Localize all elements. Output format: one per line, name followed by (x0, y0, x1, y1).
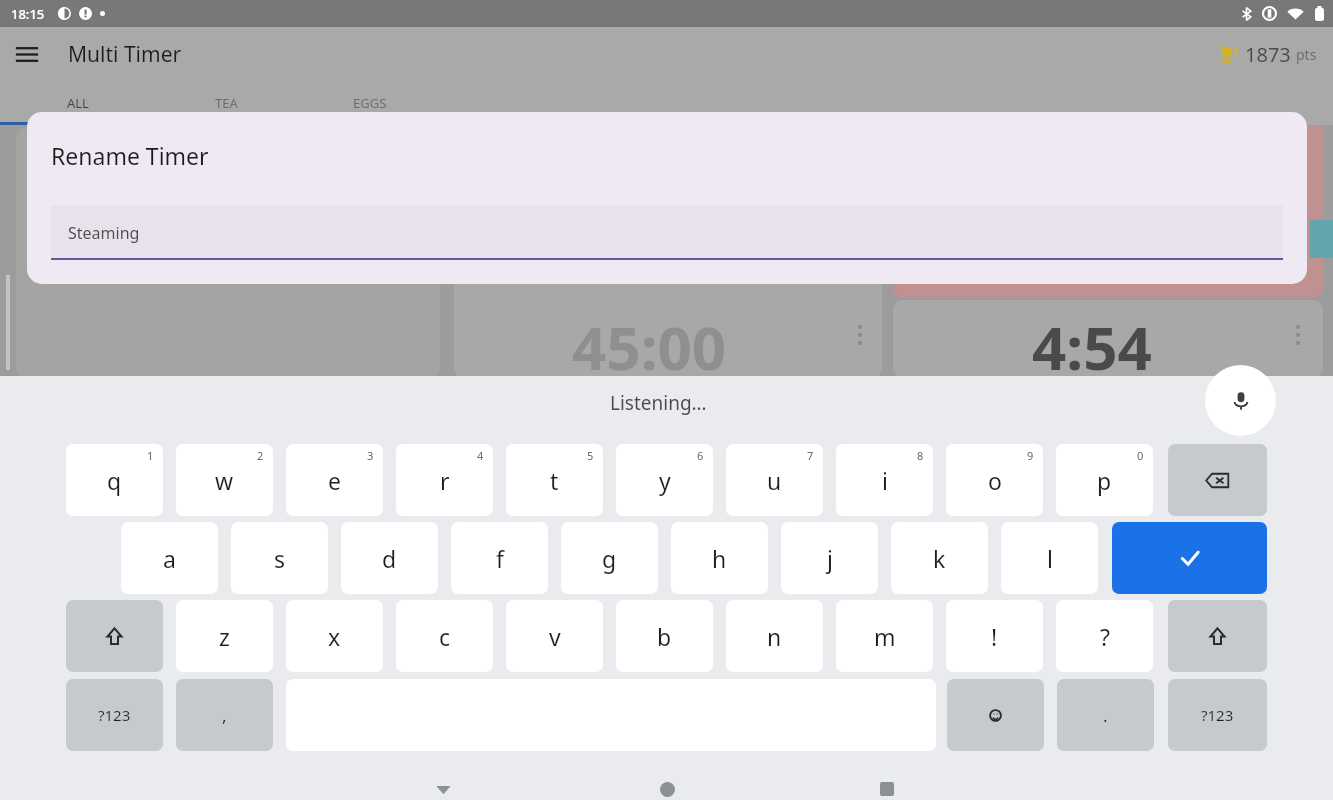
staticText: q (107, 465, 122, 496)
staticText: 18:15 (11, 5, 45, 23)
button[interactable]: x (286, 600, 383, 672)
button[interactable]: r (396, 444, 493, 516)
staticText: r (440, 465, 450, 496)
button[interactable]: Shift (1168, 600, 1267, 672)
button[interactable]: t (506, 444, 603, 516)
staticText: y (659, 465, 671, 496)
button[interactable]: g (561, 522, 658, 594)
button[interactable]: Backspace (1168, 444, 1267, 516)
button[interactable] (16, 128, 440, 378)
button[interactable]: Open navigation menu (8, 35, 46, 73)
staticText: 2 (257, 448, 264, 463)
staticText: w (215, 465, 234, 496)
button[interactable]: k (891, 522, 988, 594)
staticText: x (328, 621, 341, 652)
button[interactable]: 5:00 (16, 128, 122, 278)
button[interactable]: , (176, 679, 273, 751)
staticText: 1873 (1245, 41, 1291, 68)
staticText: 3 (367, 448, 374, 463)
button[interactable]: a (121, 522, 218, 594)
button[interactable]: i (836, 444, 933, 516)
staticText: 1 (147, 448, 154, 463)
button[interactable]: l (1001, 522, 1098, 594)
button[interactable]: . (1057, 679, 1154, 751)
button[interactable]: ? (1056, 600, 1153, 672)
button[interactable]: ! (946, 600, 1043, 672)
button[interactable]: TEA (176, 81, 276, 125)
staticText: pts (1296, 45, 1317, 64)
button[interactable]: Enter (1112, 522, 1267, 594)
staticText: v (549, 621, 561, 652)
button[interactable]: n (726, 600, 823, 672)
staticText: 5 (587, 448, 594, 463)
staticText: Listening… (610, 390, 707, 416)
button[interactable]: 1873 (1217, 41, 1317, 68)
button[interactable]: Emoji (947, 679, 1044, 751)
button[interactable] (893, 86, 1323, 298)
button[interactable]: y (616, 444, 713, 516)
button[interactable]: m (836, 600, 933, 672)
staticText: ALL (67, 94, 89, 112)
button[interactable]: o (946, 444, 1043, 516)
button[interactable]: More options (1291, 325, 1305, 347)
staticText: g (602, 543, 617, 574)
button[interactable]: More options (1291, 100, 1305, 122)
staticText: 7 (807, 448, 814, 463)
staticText: 0 (1137, 448, 1144, 463)
staticText: u (767, 465, 782, 496)
button[interactable]: z (176, 600, 273, 672)
button[interactable]: Home (636, 758, 698, 800)
button[interactable]: 6:00 (122, 128, 228, 278)
staticText: Multi Timer (68, 40, 182, 69)
staticText: n (767, 621, 782, 652)
staticText: i (882, 465, 888, 496)
button[interactable]: v (506, 600, 603, 672)
staticText: ?123 (98, 705, 131, 725)
button[interactable]: b (616, 600, 713, 672)
button[interactable]: ?123 (1168, 679, 1267, 751)
staticText: 6 (697, 448, 704, 463)
staticText: . (1103, 704, 1108, 727)
staticText: ! (991, 621, 998, 652)
staticText: Steaming (68, 222, 140, 244)
button[interactable]: d (341, 522, 438, 594)
button[interactable]: 7:00 (228, 128, 334, 278)
staticText: 8 (917, 448, 924, 463)
button[interactable]: 8:00 (334, 128, 440, 278)
staticText: j (827, 543, 833, 574)
button[interactable]: q (66, 444, 163, 516)
button[interactable]: h (671, 522, 768, 594)
button[interactable]: u (726, 444, 823, 516)
staticText: 4 (477, 448, 484, 463)
staticText: 45:00 (572, 306, 727, 388)
staticText: o (988, 465, 1002, 496)
button[interactable]: Back (412, 758, 474, 800)
button[interactable]: More options (853, 325, 867, 347)
button[interactable] (454, 86, 882, 378)
button[interactable]: e (286, 444, 383, 516)
button[interactable]: p (1056, 444, 1153, 516)
staticText: Rename Timer (51, 140, 209, 171)
button[interactable]: More options (853, 100, 867, 122)
button[interactable]: ALL (28, 81, 128, 125)
button[interactable]: f (451, 522, 548, 594)
button[interactable]: s (231, 522, 328, 594)
button[interactable]: Voice input (1205, 365, 1276, 436)
staticText: TEA (215, 94, 238, 112)
staticText: p (1097, 465, 1112, 496)
button[interactable]: Shift (66, 600, 163, 672)
staticText: b (657, 621, 672, 652)
staticText: , (222, 704, 227, 727)
button[interactable] (893, 300, 1323, 378)
button[interactable]: w (176, 444, 273, 516)
button[interactable]: c (396, 600, 493, 672)
button[interactable]: Steaming (51, 206, 1283, 259)
staticText: 9 (1027, 448, 1034, 463)
button[interactable]: ?123 (66, 679, 163, 751)
button[interactable]: EGGS (320, 81, 420, 125)
button[interactable]: Recent apps (856, 758, 918, 800)
button[interactable]: j (781, 522, 878, 594)
staticText: c (439, 621, 451, 652)
staticText: s (274, 543, 286, 574)
